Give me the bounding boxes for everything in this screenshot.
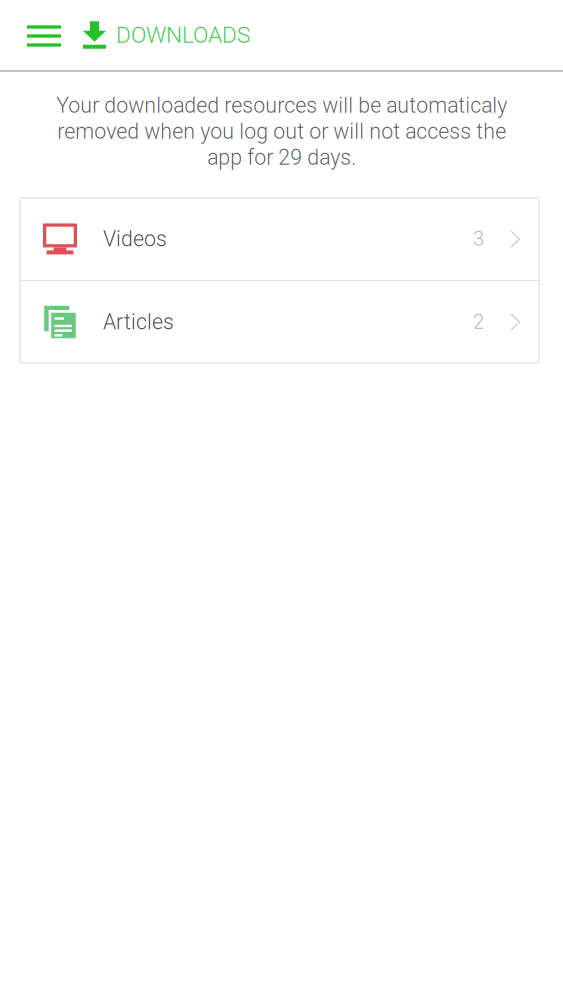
- button[interactable]: Videos: [20, 198, 539, 280]
- staticText: 3: [473, 227, 484, 251]
- staticText: Articles: [103, 309, 174, 334]
- staticText: Videos: [103, 226, 167, 251]
- button[interactable]: Menu: [0, 0, 83, 70]
- staticText: 2: [473, 310, 484, 334]
- button[interactable]: Articles: [20, 281, 539, 363]
- button[interactable]: DOWNLOADS: [83, 0, 250, 70]
- staticText: DOWNLOADS: [116, 22, 250, 48]
- staticText: Your downloaded resources will be automa…: [56, 93, 507, 170]
